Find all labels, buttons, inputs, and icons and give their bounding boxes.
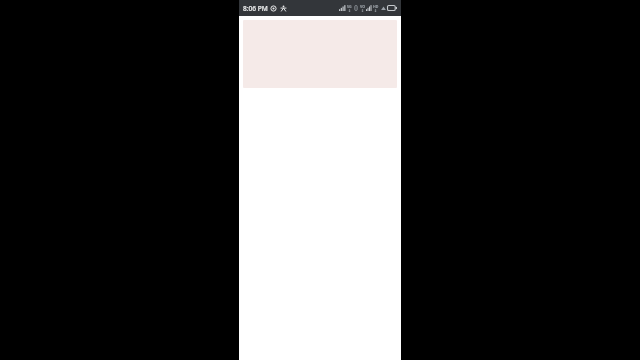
staticText: 8:06 PM [243,4,268,13]
staticText: ↕ [374,9,378,13]
staticText: ↕ [361,9,365,13]
staticText: VO [360,4,366,9]
staticText: HD [373,4,379,9]
staticText: ↕ [348,9,352,13]
staticText: 5G [347,4,352,9]
